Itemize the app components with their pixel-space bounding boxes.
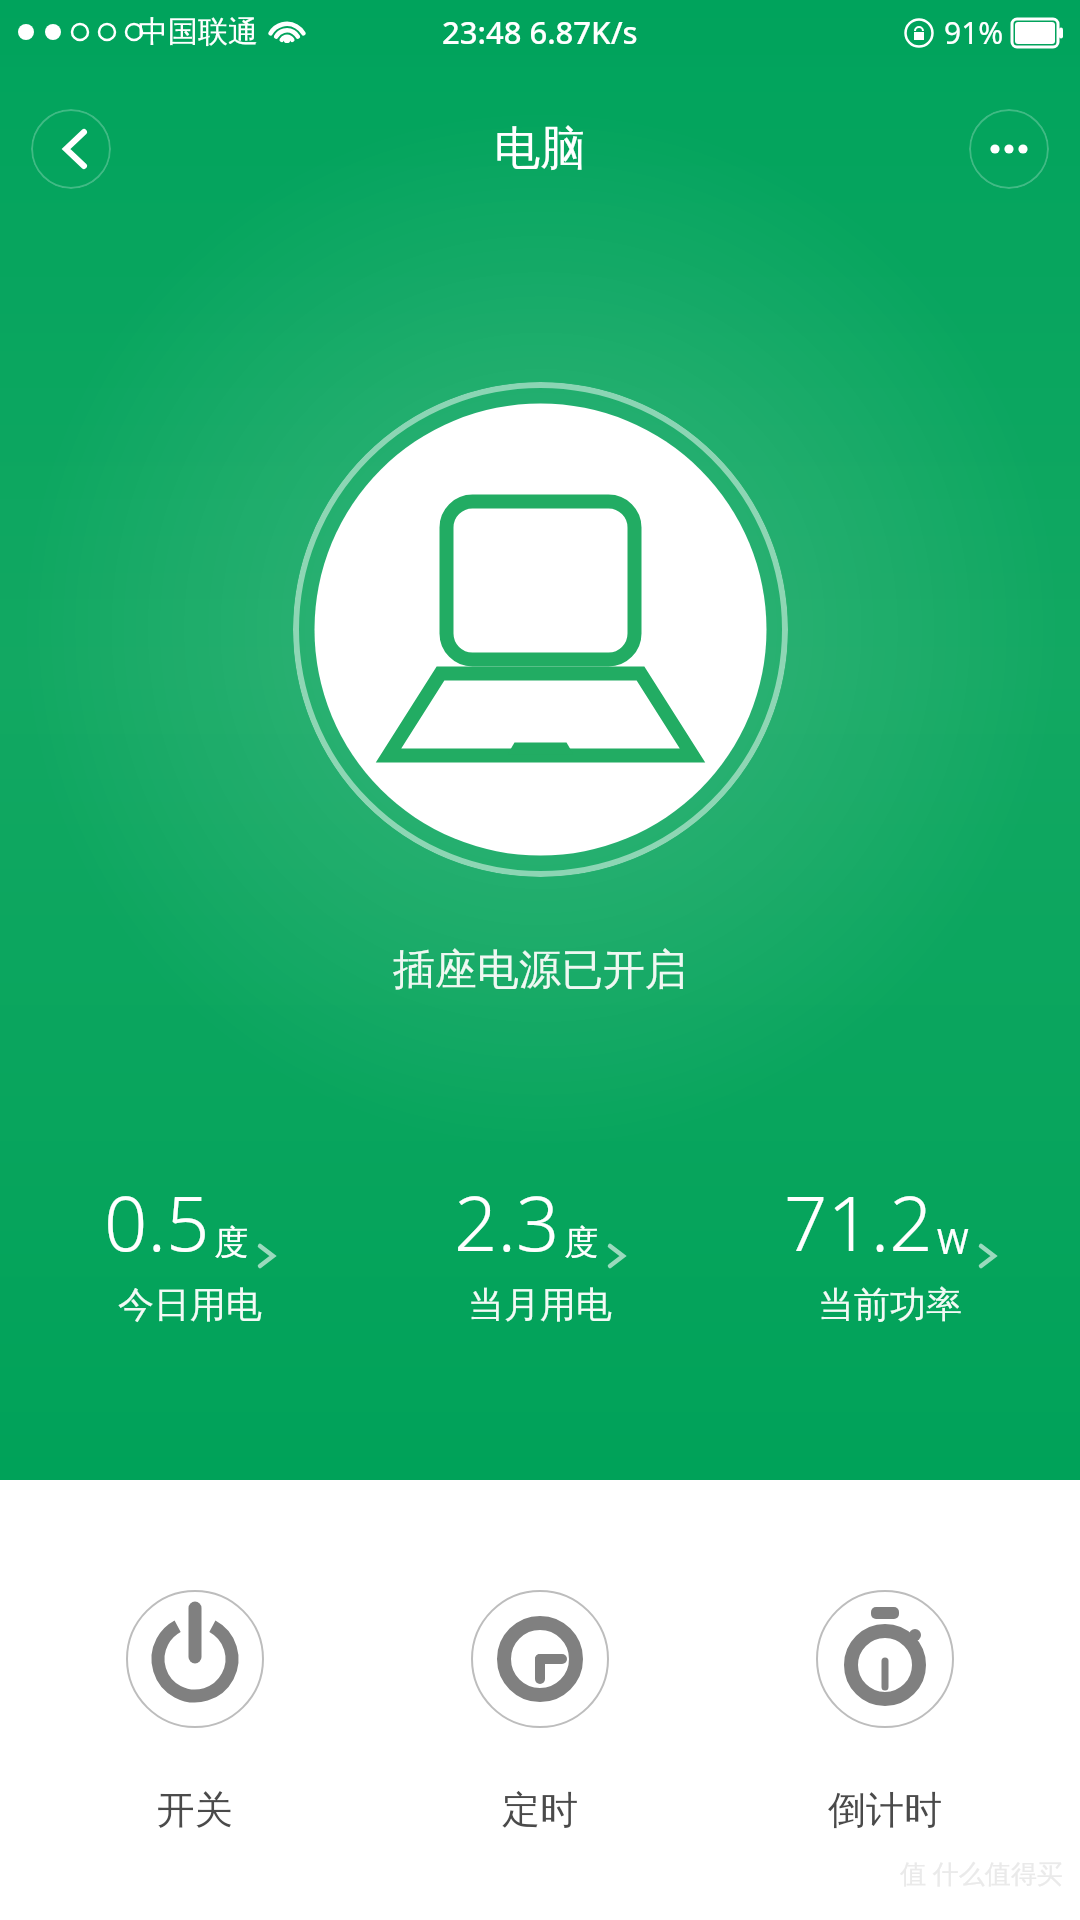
staticText: 倒计时 [828, 1786, 942, 1834]
staticText: 插座电源已开启 [393, 944, 687, 997]
staticText: 2.3 [454, 1170, 560, 1274]
button[interactable]: 71.2 [730, 1170, 1050, 1327]
button[interactable]: 0.5 [30, 1170, 350, 1327]
button[interactable]: Countdown [735, 1480, 1035, 1834]
staticText: 度 [564, 1221, 598, 1264]
button[interactable]: More options [969, 109, 1049, 189]
staticText: 23:48 6.87K/s [442, 11, 638, 53]
staticText: 电脑 [494, 120, 586, 178]
staticText: 值 什么值得买 [900, 1855, 1063, 1891]
staticText: 中国联通 [138, 13, 258, 51]
staticText: 0.5 [104, 1170, 210, 1274]
staticText: W [937, 1218, 969, 1264]
button[interactable]: 2.3 [380, 1170, 700, 1327]
staticText: 当月用电 [468, 1282, 612, 1327]
button[interactable]: Back [31, 109, 111, 189]
staticText: 度 [214, 1221, 248, 1264]
staticText: 当前功率 [818, 1282, 962, 1327]
staticText: 91% [944, 12, 1004, 53]
staticText: 开关 [157, 1786, 233, 1834]
staticText: 71.2 [784, 1170, 933, 1274]
button[interactable]: Power switch [45, 1480, 345, 1834]
staticText: 今日用电 [118, 1282, 262, 1327]
staticText: 定时 [502, 1786, 578, 1834]
button[interactable]: Computer plug power toggle [293, 382, 788, 877]
button[interactable]: Schedule timer [390, 1480, 690, 1834]
